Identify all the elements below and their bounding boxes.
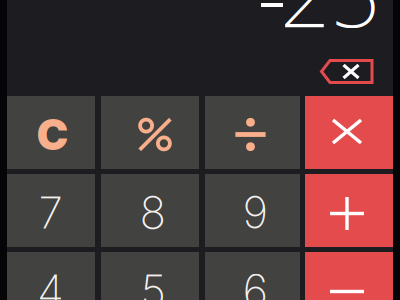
staticText: C	[36, 109, 68, 160]
staticText: 4	[37, 264, 64, 300]
staticText: 8	[139, 186, 166, 239]
button[interactable]: 6	[205, 252, 300, 300]
button[interactable]: Divide	[205, 96, 300, 169]
button[interactable]: 7	[0, 174, 95, 247]
button[interactable]: C	[0, 96, 95, 169]
button[interactable]: 5	[101, 252, 199, 300]
staticText: 25	[280, 0, 380, 51]
button[interactable]: Multiply	[305, 96, 395, 169]
button[interactable]: 4	[0, 252, 95, 300]
button[interactable]: 9	[205, 174, 300, 247]
button[interactable]: Subtract	[305, 252, 395, 300]
button[interactable]: 8	[101, 174, 199, 247]
button[interactable]: Percent	[101, 96, 199, 169]
staticText: 5	[140, 264, 165, 300]
button[interactable]: Add	[305, 174, 395, 247]
staticText: 9	[242, 186, 268, 239]
staticText: 7	[38, 186, 62, 239]
button[interactable]: Delete	[320, 59, 373, 84]
staticText: 6	[242, 264, 268, 300]
